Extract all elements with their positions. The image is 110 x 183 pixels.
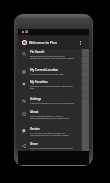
staticText: About xyxy=(30,110,39,114)
staticText: 24 xyxy=(25,30,29,34)
button[interactable]: Settings xyxy=(18,96,81,109)
staticText: General configuration of the application xyxy=(30,101,74,104)
button[interactable]: Welcome to Plex xyxy=(18,35,89,49)
button[interactable]: About xyxy=(18,109,81,126)
button[interactable]: Share xyxy=(18,141,81,151)
staticText: Show my current location now xyxy=(30,72,64,75)
staticText: Do you like this app? Support its develo… xyxy=(30,131,69,137)
button[interactable]: More options xyxy=(76,38,85,47)
button[interactable]: Pin Search xyxy=(18,49,81,67)
staticText: Ranking your favorite spots, defined by … xyxy=(30,84,74,90)
staticText: Share xyxy=(30,142,38,146)
staticText: Welcome to Plex xyxy=(29,40,57,45)
staticText: My Current Location xyxy=(30,68,59,72)
button[interactable]: My Favorites xyxy=(18,79,81,96)
staticText: Review xyxy=(30,127,40,131)
button[interactable]: Review xyxy=(18,126,81,141)
staticText: Settings xyxy=(30,97,42,101)
staticText: My Favorites xyxy=(30,80,48,84)
staticText: About the application. Credits, acknowle… xyxy=(30,114,70,120)
staticText: Share this application with your friends xyxy=(30,146,74,149)
button[interactable]: My Current Location xyxy=(18,67,81,79)
staticText: Pin Search xyxy=(30,50,45,54)
staticText: Search points of interest whose keywords… xyxy=(30,54,74,60)
